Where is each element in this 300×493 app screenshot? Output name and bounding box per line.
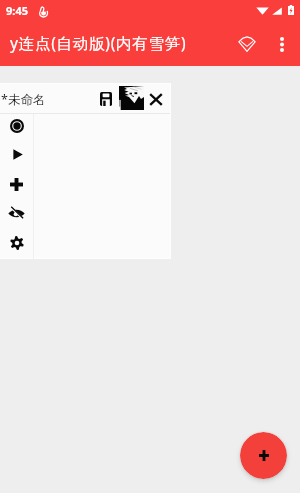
button[interactable]: More options	[264, 26, 300, 62]
staticText: y连点(自动版)(内有雪笋)	[10, 32, 187, 53]
button[interactable]: Settings	[2, 228, 31, 257]
staticText: 9:45	[6, 3, 28, 18]
button[interactable]: Add	[2, 170, 31, 199]
button[interactable]: Close	[144, 87, 168, 111]
button[interactable]: Add	[240, 432, 287, 479]
button[interactable]: Hide	[2, 198, 31, 227]
button[interactable]: Profile	[119, 86, 144, 110]
button[interactable]: Play	[3, 140, 32, 169]
staticText: *未命名	[1, 91, 46, 108]
button[interactable]: Gem	[229, 26, 265, 62]
button[interactable]: Record	[2, 111, 31, 140]
button[interactable]: Save	[94, 87, 118, 111]
